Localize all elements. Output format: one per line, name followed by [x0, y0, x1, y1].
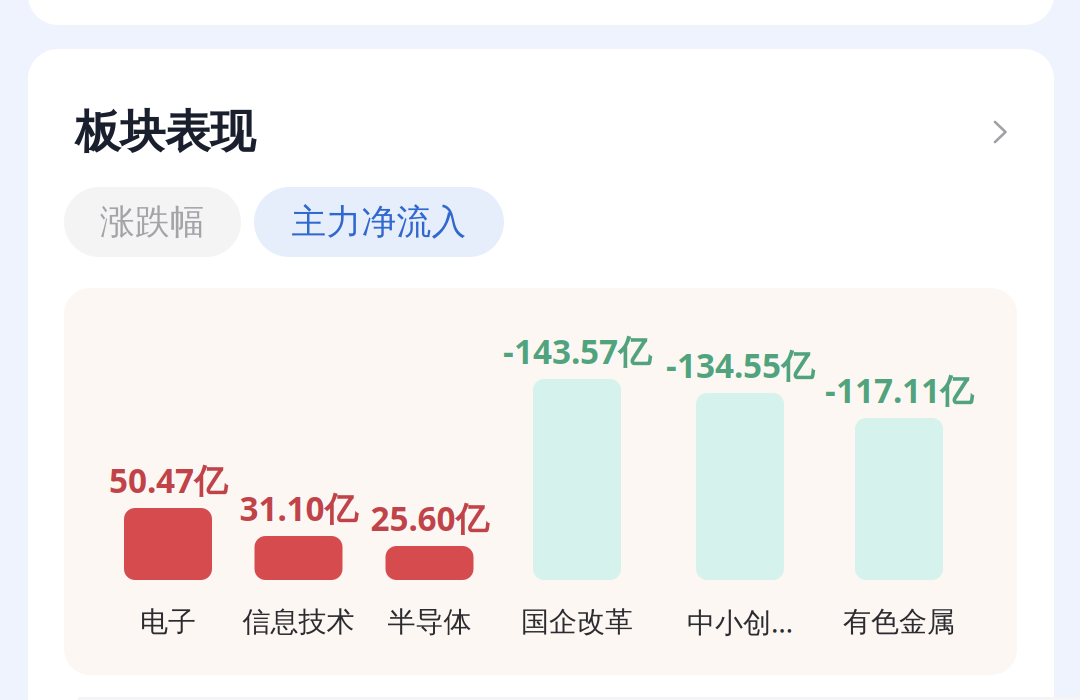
- staticText: -117.11亿: [825, 368, 973, 412]
- button[interactable]: 主力净流入: [254, 187, 504, 257]
- staticText: 电子: [140, 605, 196, 639]
- staticText: 31.10亿: [239, 486, 357, 530]
- staticText: 涨跌幅: [100, 201, 205, 243]
- staticText: -134.55亿: [666, 343, 814, 387]
- staticText: 50.47亿: [109, 458, 227, 502]
- staticText: 主力净流入: [291, 201, 466, 243]
- staticText: 板块表现: [75, 104, 255, 160]
- button[interactable]: 涨跌幅: [64, 187, 241, 257]
- button[interactable]: 板块表现: [75, 95, 1007, 169]
- staticText: 25.60亿: [370, 496, 488, 540]
- staticText: 半导体: [387, 605, 471, 639]
- staticText: 中小创…: [687, 603, 793, 641]
- staticText: 有色金属: [843, 605, 955, 639]
- staticText: -143.57亿: [503, 329, 651, 373]
- staticText: 国企改革: [521, 605, 633, 639]
- staticText: 信息技术: [242, 605, 354, 639]
